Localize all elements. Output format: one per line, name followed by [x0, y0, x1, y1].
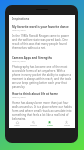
staticText: Explore	[30, 124, 37, 127]
staticText: April 12, 2019	[12, 96, 26, 99]
staticText: Photography has become one of the most a…	[12, 65, 72, 89]
button[interactable]: How to think about life at home	[12, 92, 72, 121]
staticText: Profile	[64, 124, 70, 127]
staticText: How to think about life at home	[12, 92, 58, 96]
button[interactable]: Saved	[41, 120, 58, 128]
button[interactable]: My favorite word is your favorite dance	[12, 25, 72, 50]
button[interactable]: Inspirations	[9, 15, 75, 22]
staticText: April 18, 2019	[12, 29, 26, 32]
staticText: My favorite word is your favorite dance	[12, 25, 69, 29]
staticText: Camera Apps and Strengths	[12, 56, 52, 60]
staticText: April 16, 2019	[12, 60, 26, 63]
button[interactable]: Explore	[25, 120, 41, 128]
staticText: In the 1980s Ronald Reagan came to power…	[12, 34, 72, 50]
staticText: Saved	[47, 124, 53, 127]
button[interactable]: Profile	[58, 120, 75, 128]
staticText: Inspirations	[12, 17, 30, 21]
staticText: Home has always been more than just four…	[12, 101, 72, 121]
button[interactable]: Home	[9, 120, 25, 128]
staticText: Home	[14, 124, 20, 127]
button[interactable]: Camera Apps and Strengths	[12, 56, 72, 89]
